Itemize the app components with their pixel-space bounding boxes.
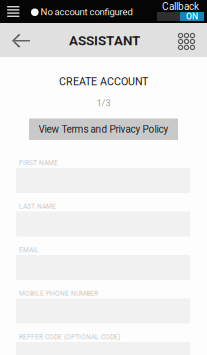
staticText: LAST NAME bbox=[19, 203, 56, 210]
staticText: EMAIL bbox=[19, 246, 39, 254]
staticText: Callback bbox=[162, 1, 199, 12]
staticText: FIRST NAME bbox=[19, 159, 58, 167]
button[interactable]: ON bbox=[180, 12, 204, 21]
staticText: 1/3 bbox=[96, 97, 110, 108]
button[interactable]: View Terms and Privacy Policy bbox=[29, 118, 178, 140]
button[interactable]: Back bbox=[0, 23, 40, 57]
staticText: OFF bbox=[160, 11, 176, 22]
button[interactable]: Menu bbox=[0, 0, 26, 23]
staticText: ASSISTANT bbox=[69, 33, 140, 48]
button[interactable]: Keypad bbox=[166, 23, 207, 57]
staticText: MOBILE PHONE NUMBER bbox=[19, 290, 98, 297]
staticText: CREATE ACCOUNT bbox=[59, 75, 148, 88]
staticText: No account configured bbox=[41, 6, 133, 18]
staticText: View Terms and Privacy Policy bbox=[38, 123, 168, 135]
staticText: ON bbox=[186, 11, 198, 22]
staticText: REFFER CODE (OPTIONAL CODE) bbox=[19, 333, 120, 341]
